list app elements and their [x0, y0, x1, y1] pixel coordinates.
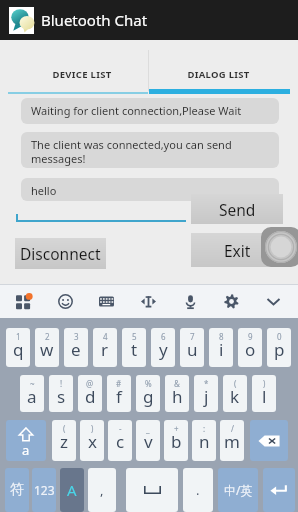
staticText: A: [67, 480, 77, 500]
button[interactable]: DEVICE LIST: [14, 42, 150, 92]
staticText: l: [262, 385, 267, 408]
staticText: p: [274, 338, 285, 361]
staticText: y: [159, 338, 168, 361]
button[interactable]: Emoji: [52, 286, 78, 316]
button[interactable]: 5: [122, 328, 146, 367]
staticText: hello: [31, 183, 57, 198]
button[interactable]: Shift: [6, 420, 46, 461]
staticText: 5: [132, 331, 137, 342]
button[interactable]: _: [136, 420, 160, 461]
button[interactable]: ): [252, 375, 276, 412]
staticText: ,: [100, 481, 104, 499]
button[interactable]: ): [80, 420, 104, 461]
button[interactable]: &: [165, 375, 189, 412]
staticText: 6: [161, 331, 166, 342]
button[interactable]: Keyboard layout: [93, 286, 119, 316]
button[interactable]: #: [107, 375, 131, 412]
button[interactable]: -: [108, 420, 132, 461]
staticText: n: [199, 430, 210, 453]
staticText: i: [219, 338, 224, 361]
button[interactable]: .: [183, 468, 213, 512]
staticText: _: [146, 423, 150, 434]
staticText: 7: [190, 331, 195, 342]
staticText: u: [187, 338, 198, 361]
button[interactable]: (: [52, 420, 76, 461]
button[interactable]: !: [49, 375, 73, 412]
button[interactable]: 符: [5, 468, 29, 512]
staticText: r: [101, 338, 109, 361]
button[interactable]: 1: [6, 328, 30, 367]
staticText: e: [71, 338, 81, 361]
staticText: Send: [219, 199, 256, 220]
button[interactable]: 4: [93, 328, 117, 367]
button[interactable]: Backspace: [250, 420, 288, 461]
staticText: s: [57, 385, 66, 408]
button[interactable]: 3: [64, 328, 88, 367]
button[interactable]: +: [164, 420, 188, 461]
staticText: Waiting for client connection,Please Wai…: [31, 103, 242, 118]
staticText: ~: [30, 378, 35, 389]
staticText: a: [27, 385, 37, 408]
staticText: a: [22, 441, 30, 459]
staticText: 3: [74, 331, 79, 342]
staticText: 2: [45, 331, 50, 342]
button[interactable]: 7: [180, 328, 204, 367]
button[interactable]: Move cursor: [135, 286, 161, 316]
button[interactable]: %: [136, 375, 160, 412]
staticText: ): [263, 378, 266, 389]
staticText: -: [119, 423, 122, 434]
staticText: @: [86, 378, 94, 389]
staticText: :: [203, 423, 206, 434]
staticText: 4: [103, 331, 108, 342]
button[interactable]: @: [78, 375, 102, 412]
button[interactable]: Language: [60, 468, 84, 512]
button[interactable]: Space: [126, 468, 178, 512]
staticText: (: [234, 378, 237, 389]
staticText: 9: [248, 331, 253, 342]
button[interactable]: Disconnect: [15, 238, 106, 269]
button[interactable]: Settings: [218, 286, 244, 316]
staticText: #: [116, 378, 122, 389]
staticText: t: [131, 338, 138, 361]
staticText: DIALOG LIST: [187, 68, 250, 81]
button[interactable]: Apps: [10, 286, 36, 316]
staticText: +: [174, 423, 179, 434]
staticText: w: [40, 338, 54, 361]
button[interactable]: ,: [88, 468, 116, 512]
button[interactable]: 0: [267, 328, 291, 367]
button[interactable]: 中/英: [218, 468, 258, 512]
staticText: j: [204, 385, 209, 408]
staticText: &: [174, 378, 180, 389]
staticText: Bluetooth Chat: [41, 10, 148, 30]
button[interactable]: Enter: [263, 468, 295, 512]
button[interactable]: Send: [191, 194, 283, 224]
button[interactable]: Assistive touch: [261, 227, 298, 267]
button[interactable]: DIALOG LIST: [150, 42, 286, 92]
button[interactable]: *: [194, 375, 218, 412]
button[interactable]: Exit: [191, 233, 283, 267]
button[interactable]: (: [223, 375, 247, 412]
staticText: c: [116, 430, 125, 453]
button[interactable]: 9: [238, 328, 262, 367]
staticText: m: [224, 430, 240, 453]
button[interactable]: ~: [20, 375, 44, 412]
button[interactable]: 8: [209, 328, 233, 367]
staticText: .: [196, 481, 200, 499]
staticText: q: [13, 338, 24, 361]
staticText: z: [60, 430, 68, 453]
staticText: d: [85, 385, 96, 408]
staticText: 1: [16, 331, 21, 342]
button[interactable]: 2: [35, 328, 59, 367]
staticText: %: [145, 378, 152, 389]
button[interactable]: 123: [32, 468, 56, 512]
button[interactable]: 6: [151, 328, 175, 367]
staticText: (: [63, 423, 66, 434]
staticText: 0: [277, 331, 282, 342]
button[interactable]: Voice input: [177, 286, 203, 316]
staticText: 中/英: [224, 482, 253, 498]
button[interactable]: :: [192, 420, 216, 461]
button[interactable]: /: [220, 420, 244, 461]
staticText: b: [171, 430, 182, 453]
button[interactable]: Hide keyboard: [260, 286, 286, 316]
staticText: ): [91, 423, 94, 434]
